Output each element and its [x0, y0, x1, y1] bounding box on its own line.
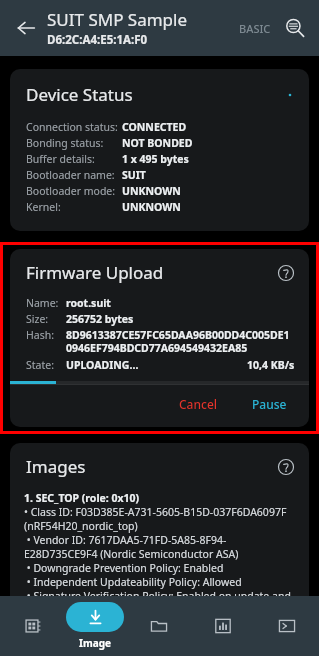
staticText: 256752 bytes — [66, 312, 134, 326]
button[interactable]: Shell — [255, 596, 319, 656]
staticText: Bonding status: — [26, 136, 122, 150]
staticText: Buffer details: — [26, 152, 122, 166]
staticText: BASIC — [239, 21, 271, 36]
staticText: • Independent Updateability Policy: Allo… — [24, 575, 242, 589]
staticText: Connection status: — [26, 120, 122, 134]
staticText: CONNECTED — [122, 120, 187, 134]
button[interactable]: Pause — [240, 391, 299, 417]
staticText: UNKNOWN — [122, 184, 181, 198]
button[interactable]: Device — [0, 596, 63, 656]
button[interactable]: Files — [127, 596, 191, 656]
staticText: Name: — [26, 296, 66, 310]
staticText: 10,4 KB/s — [247, 358, 295, 372]
staticText: Device Status — [26, 83, 133, 106]
button[interactable]: Help — [275, 456, 297, 478]
staticText: • Vendor ID: 7617DAA5-71FD-5A85-8F94-E28… — [24, 533, 297, 561]
button[interactable]: Cancel — [167, 391, 230, 417]
button[interactable]: Stats — [191, 596, 255, 656]
staticText: Hash: — [26, 328, 66, 342]
staticText: Image — [79, 636, 111, 650]
staticText: • Signature Verification Policy: Enabled… — [24, 589, 297, 596]
staticText: 1. SEC_TOP (role: 0x10) — [24, 491, 140, 505]
staticText: Images — [26, 455, 86, 478]
button[interactable]: Back — [6, 8, 46, 48]
staticText: UNKNOWN — [122, 200, 181, 214]
staticText: SUIT — [122, 168, 146, 182]
staticText: 8D9613387CE57FC65DAA96B00DD4C005DE10946E… — [66, 328, 295, 355]
staticText: Bootloader mode: — [26, 184, 122, 198]
staticText: • Class ID: F03D385E-A731-5605-B15D-037F… — [24, 505, 297, 533]
button[interactable]: Search — [275, 8, 315, 48]
staticText: Cancel — [179, 396, 218, 412]
staticText: • Downgrade Prevention Policy: Enabled — [24, 561, 224, 575]
staticText: SUIT SMP Sample — [47, 8, 188, 31]
staticText: Pause — [252, 396, 287, 412]
staticText: 1 x 495 bytes — [122, 152, 189, 166]
button[interactable]: BASIC — [235, 13, 275, 44]
staticText: State: — [26, 358, 66, 372]
button[interactable]: Image — [63, 596, 127, 656]
staticText: Firmware Upload — [26, 261, 164, 284]
staticText: UPLOADING… — [66, 358, 139, 372]
staticText: Size: — [26, 312, 66, 326]
staticText: D6:2C:A4:E5:1A:F0 — [47, 32, 148, 48]
staticText: NOT BONDED — [122, 136, 193, 150]
button[interactable]: Help — [275, 262, 297, 284]
staticText: Bootloader name: — [26, 168, 122, 182]
staticText: root.suit — [66, 296, 111, 310]
staticText: Kernel: — [26, 200, 122, 214]
